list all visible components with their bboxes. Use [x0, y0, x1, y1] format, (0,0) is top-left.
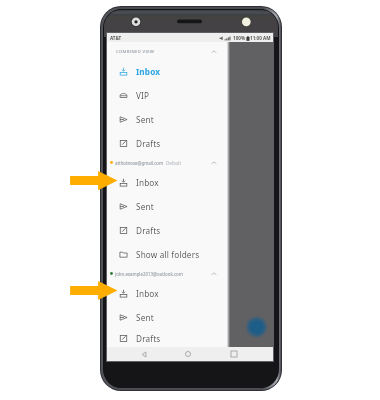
- button[interactable]: Home: [175, 347, 201, 361]
- staticText: Show all folders: [136, 249, 200, 260]
- staticText: Drafts: [136, 333, 161, 344]
- staticText: VIP: [136, 90, 150, 101]
- button[interactable]: COMBINED VIEW: [107, 44, 227, 59]
- staticText: 11:00 AM: [250, 35, 271, 41]
- button[interactable]: Inbox: [107, 281, 227, 305]
- button[interactable]: Sent: [107, 107, 227, 131]
- button[interactable]: Drafts: [107, 131, 227, 155]
- staticText: Default: [166, 160, 182, 166]
- button[interactable]: Show all folders: [107, 242, 227, 266]
- button[interactable]: Recents: [221, 347, 247, 361]
- button[interactable]: Drafts: [107, 329, 227, 348]
- button[interactable]: Drafts: [107, 218, 227, 242]
- button[interactable]: VIP: [107, 83, 227, 107]
- staticText: 100%: [233, 35, 246, 41]
- button[interactable]: atthotnose@gmail.com: [107, 155, 227, 170]
- staticText: Inbox: [136, 177, 159, 188]
- staticText: Sent: [136, 312, 154, 323]
- staticText: john.example2013@outlook.com: [115, 271, 183, 277]
- button[interactable]: Inbox: [107, 59, 227, 83]
- button[interactable]: Back: [131, 347, 157, 361]
- staticText: Inbox: [136, 288, 159, 299]
- staticText: Drafts: [136, 138, 161, 149]
- staticText: COMBINED VIEW: [116, 49, 155, 55]
- staticText: Inbox: [136, 66, 161, 77]
- staticText: atthotnose@gmail.com: [115, 160, 164, 166]
- button[interactable]: Sent: [107, 305, 227, 329]
- staticText: AT&T: [110, 35, 122, 41]
- staticText: Drafts: [136, 225, 161, 236]
- staticText: Sent: [136, 114, 154, 125]
- button[interactable]: john.example2013@outlook.com: [107, 266, 227, 281]
- button[interactable]: Inbox: [107, 170, 227, 194]
- staticText: Sent: [136, 201, 154, 212]
- button[interactable]: Sent: [107, 194, 227, 218]
